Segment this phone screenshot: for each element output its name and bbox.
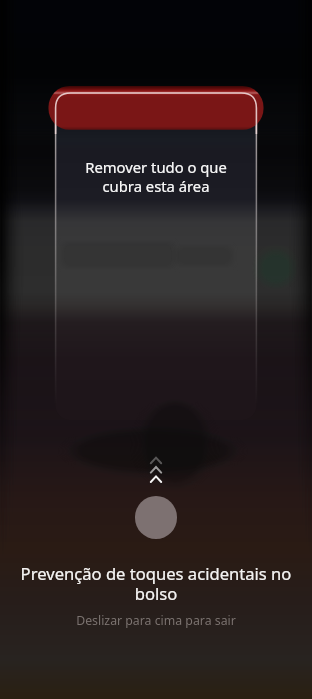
other: Deslizar para cima para sair <box>0 0 312 699</box>
button[interactable]: Área de toque <box>135 496 177 539</box>
staticText: Deslizar para cima para sair <box>0 612 312 629</box>
staticText: Prevenção de toques acidentais no bolso <box>16 562 296 605</box>
staticText: Remover tudo o que cubra esta área <box>85 157 227 196</box>
